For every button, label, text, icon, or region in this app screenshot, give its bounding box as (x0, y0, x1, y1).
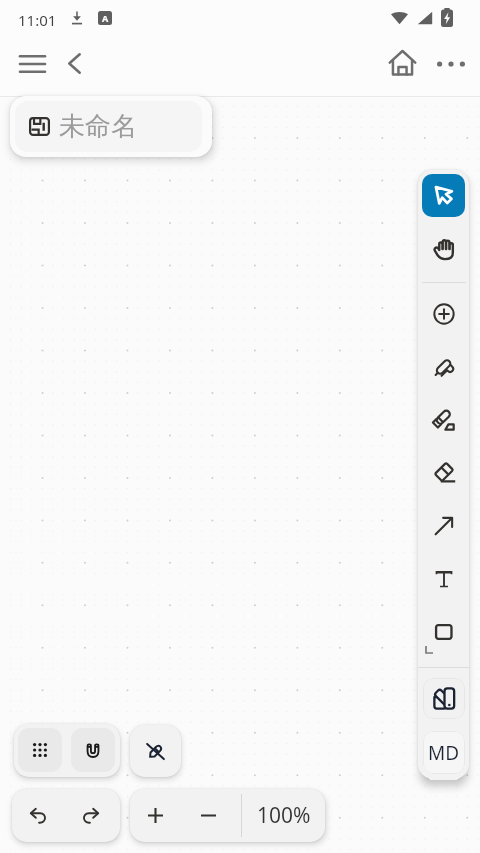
button[interactable]: Zoom out (183, 789, 233, 842)
button[interactable]: 100% (242, 789, 325, 842)
button[interactable]: Markdown (423, 731, 465, 774)
staticText: 11:01 (18, 10, 57, 30)
button[interactable]: Highlighter (422, 398, 465, 441)
button[interactable]: Back (54, 43, 95, 84)
staticText: 100% (257, 801, 311, 830)
button[interactable]: Disable drawing (130, 725, 181, 777)
button[interactable]: Select (422, 174, 465, 217)
button[interactable]: Redo (65, 789, 117, 842)
staticText: MD (428, 740, 460, 766)
staticText: 未命名 (59, 110, 137, 143)
button[interactable]: Shape (422, 610, 465, 653)
button[interactable]: Eraser (422, 451, 465, 494)
staticText: A (102, 12, 109, 24)
button[interactable]: Zoom in (130, 789, 180, 842)
button[interactable]: Arrow (422, 504, 465, 547)
button[interactable]: Undo (12, 789, 64, 842)
button[interactable]: Grid (18, 728, 62, 772)
button[interactable]: Snap to grid (71, 728, 115, 772)
button[interactable]: More options (430, 43, 471, 84)
button[interactable]: Pan (422, 227, 465, 270)
button[interactable]: 未命名 (15, 101, 202, 152)
button[interactable]: Home (382, 43, 423, 84)
button[interactable]: Text (422, 557, 465, 600)
button[interactable]: Colors (423, 678, 465, 719)
button[interactable]: Pen (422, 345, 465, 388)
button[interactable]: Menu (12, 43, 53, 84)
button[interactable]: Add (422, 292, 465, 335)
